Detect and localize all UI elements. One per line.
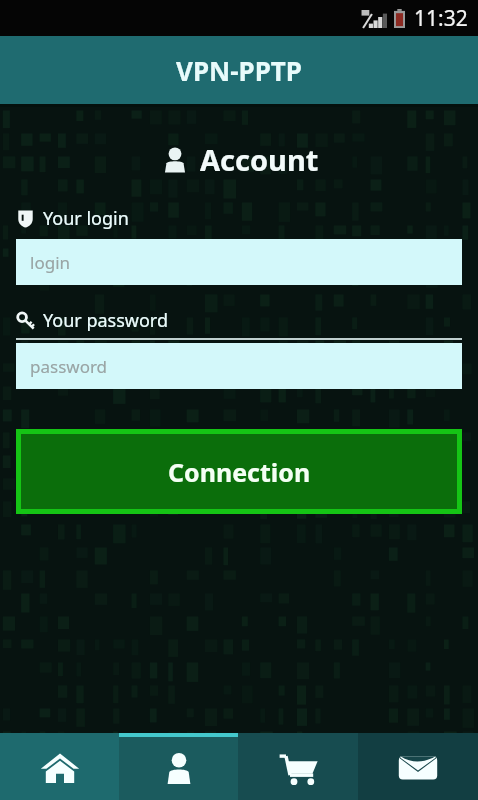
button[interactable]: Connection [16,429,462,514]
button[interactable]: Account [119,733,238,800]
staticText: Account [200,140,319,179]
button[interactable]: Mail [358,733,478,800]
staticText: Your login [43,206,129,231]
staticText: Your password [43,308,169,333]
button[interactable]: password [16,343,462,389]
button[interactable]: Shop [238,733,358,800]
staticText: 11:32 [414,4,468,33]
staticText: password [30,355,108,378]
button[interactable]: Home [0,733,119,800]
staticText: Connection [168,455,311,489]
button[interactable]: login [16,239,462,285]
staticText: login [30,251,71,274]
staticText: VPN-PPTP [176,53,302,88]
